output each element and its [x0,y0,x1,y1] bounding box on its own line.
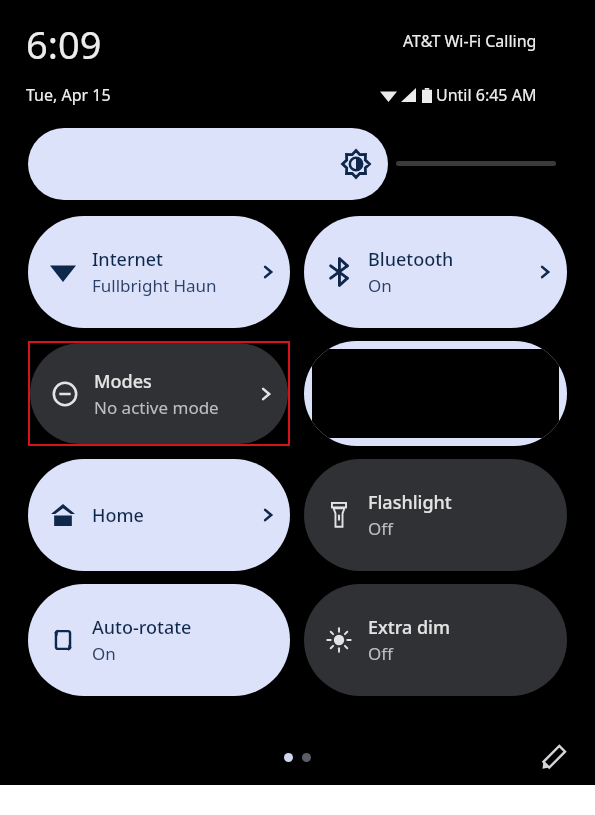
button[interactable]: Brightness [28,128,388,200]
button[interactable]: Modes [30,343,288,444]
button[interactable]: Edit tiles [537,740,571,774]
staticText: On [368,274,392,297]
staticText: Modes [94,369,152,394]
staticText: Auto-rotate [92,615,192,640]
staticText: AT&T Wi-Fi Calling [403,30,537,52]
staticText: Off [368,517,393,540]
button[interactable]: Extra dim [304,584,567,696]
staticText: Flashlight [368,490,452,515]
staticText: Internet [92,247,164,272]
staticText: Bluetooth [368,247,454,272]
staticText: Until 6:45 AM [436,84,537,106]
staticText: No active mode [94,396,219,419]
button[interactable]: Tile [304,341,567,446]
button[interactable]: Home [28,459,290,571]
button[interactable]: Flashlight [304,459,567,571]
staticText: On [92,642,116,665]
staticText: Tue, Apr 15 [26,84,111,106]
staticText: Off [368,642,393,665]
button[interactable]: Bluetooth [304,216,567,328]
staticText: Extra dim [368,615,450,640]
staticText: Fullbright Haun [92,274,217,297]
staticText: Home [92,503,144,528]
button[interactable]: Internet [28,216,290,328]
button[interactable]: Auto-rotate [28,584,290,696]
staticText: 6:09 [26,18,102,70]
